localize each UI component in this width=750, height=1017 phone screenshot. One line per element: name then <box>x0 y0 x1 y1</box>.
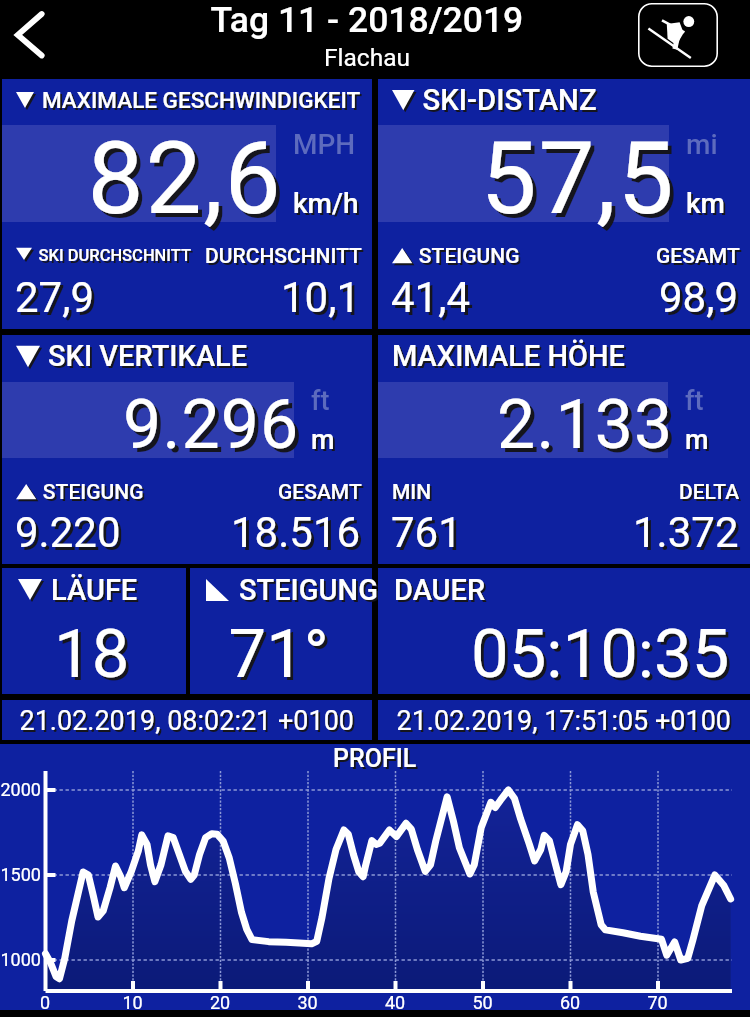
button[interactable] <box>378 700 750 740</box>
button[interactable] <box>378 568 750 694</box>
button[interactable]: Back <box>6 6 58 58</box>
button[interactable] <box>190 568 372 694</box>
button[interactable]: Ski resort logo <box>638 3 718 67</box>
button[interactable] <box>378 79 750 329</box>
button[interactable] <box>2 568 186 694</box>
button[interactable] <box>2 79 372 329</box>
button[interactable] <box>2 700 372 740</box>
button[interactable] <box>0 744 750 1010</box>
button[interactable] <box>378 335 750 564</box>
button[interactable] <box>2 335 372 564</box>
